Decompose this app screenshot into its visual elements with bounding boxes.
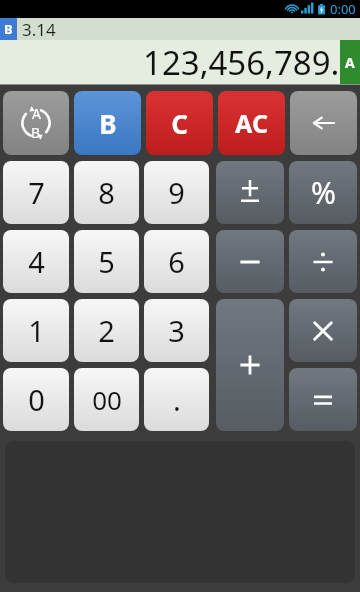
staticText: A [32,104,41,123]
button[interactable]: 4 [3,230,69,293]
staticText: AC [235,106,268,140]
staticText: 0:00 [330,0,356,18]
staticText: 00 [92,382,122,417]
button[interactable]: 2 [74,299,139,362]
button[interactable]: Swap A and B [3,91,69,155]
button[interactable]: Equals [289,368,357,431]
staticText: 3.14 [22,18,56,40]
staticText: 8 [98,173,115,212]
staticText: . [173,380,181,419]
button[interactable]: Backspace [290,91,357,155]
button[interactable]: Divide [289,230,357,293]
staticText: 0 [28,380,45,419]
staticText: 7 [28,173,45,212]
button[interactable]: . [144,368,209,431]
button[interactable]: % [289,161,357,224]
button[interactable]: Plus [216,299,284,431]
button[interactable]: Minus [216,230,284,293]
staticText: 2 [98,311,115,350]
button[interactable]: 00 [74,368,139,431]
button[interactable]: B [0,18,17,40]
staticText: 1 [28,311,45,350]
button[interactable]: 8 [74,161,139,224]
button[interactable]: 3 [144,299,209,362]
staticText: 5 [98,242,115,281]
staticText: B [99,106,117,141]
button[interactable]: 1 [3,299,69,362]
button[interactable]: Plus minus [216,161,284,224]
button[interactable]: 7 [3,161,69,224]
staticText: 4 [28,242,45,281]
button[interactable]: B [74,91,141,155]
staticText: 123,456,789. [143,40,340,85]
button[interactable]: C [146,91,213,155]
button[interactable]: 6 [144,230,209,293]
button[interactable]: 0 [3,368,69,431]
staticText: B [31,123,41,142]
button[interactable]: 5 [74,230,139,293]
staticText: B [4,20,13,38]
button[interactable]: Multiply [289,299,357,362]
button[interactable]: AC [218,91,285,155]
staticText: 6 [168,242,185,281]
staticText: C [171,106,188,141]
staticText: A [345,53,355,72]
staticText: 3 [168,311,185,350]
button[interactable]: 9 [144,161,209,224]
staticText: 9 [168,173,185,212]
button[interactable]: A [340,40,360,85]
staticText: % [311,172,336,213]
